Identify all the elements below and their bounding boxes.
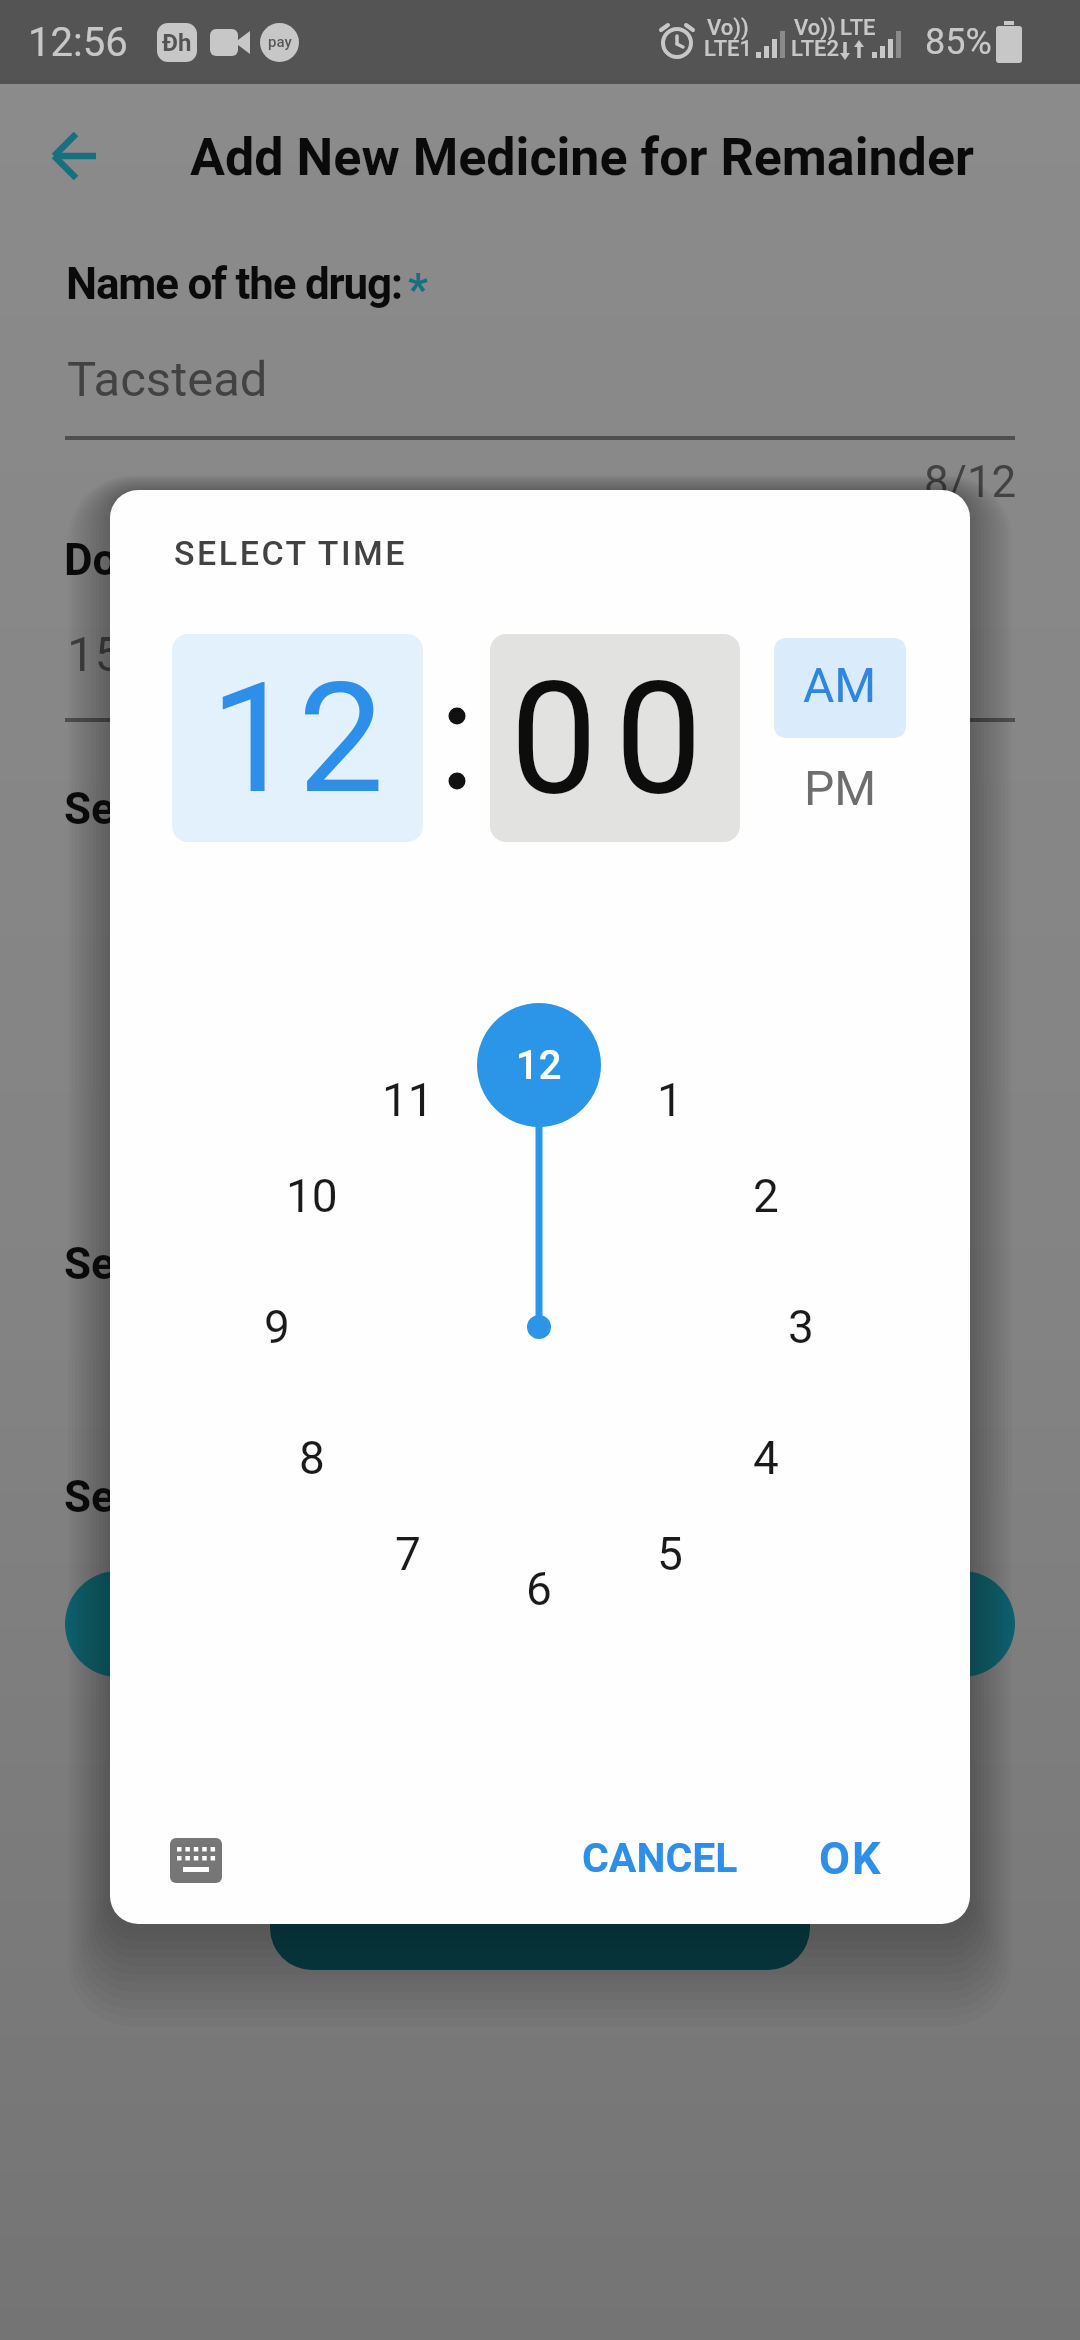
staticText: Add New Medicine for Remainder xyxy=(190,127,975,188)
button[interactable]: 5 xyxy=(630,1514,710,1594)
staticText: Tacstead xyxy=(67,351,268,408)
staticText: 1 xyxy=(657,1073,683,1127)
staticText: OK xyxy=(819,1832,883,1885)
staticText: AM xyxy=(803,657,877,713)
button[interactable]: 1 xyxy=(630,1060,710,1140)
staticText: 7 xyxy=(395,1527,421,1581)
staticText: LTE1 xyxy=(704,36,753,62)
button[interactable]: 2 xyxy=(726,1156,806,1236)
button[interactable] xyxy=(52,132,100,180)
staticText: Select xyxy=(64,1238,189,1290)
staticText: 2 xyxy=(753,1169,779,1223)
staticText: 8/12 xyxy=(924,456,1017,508)
button[interactable]: PM xyxy=(774,738,906,838)
staticText: 10 xyxy=(286,1169,338,1223)
staticText: 5 xyxy=(657,1527,683,1581)
staticText: PM xyxy=(804,760,877,816)
staticText: Name of the drug: xyxy=(66,258,403,310)
staticText: LTE2 xyxy=(791,36,840,62)
button[interactable] xyxy=(170,1838,222,1883)
staticText: Vo)) xyxy=(707,15,749,41)
staticText: LTE xyxy=(840,15,876,41)
staticText: 9 xyxy=(264,1300,290,1354)
button[interactable]: OK xyxy=(791,1818,911,1898)
button[interactable]: 12 xyxy=(477,1003,601,1127)
staticText: 4 xyxy=(753,1431,779,1485)
staticText: 3 xyxy=(788,1300,814,1354)
staticText: Select xyxy=(64,783,189,835)
staticText: 00 xyxy=(510,647,720,830)
staticText: SELECT TIME xyxy=(174,533,407,573)
button[interactable]: 9 xyxy=(237,1287,317,1367)
staticText: 11 xyxy=(382,1073,434,1127)
staticText: 8 xyxy=(299,1431,325,1485)
staticText: Vo)) xyxy=(794,15,836,41)
staticText: Select xyxy=(64,1471,189,1523)
staticText: 12 xyxy=(210,649,386,828)
button[interactable]: CANCEL xyxy=(560,1818,760,1898)
button[interactable] xyxy=(65,1571,1015,1677)
button[interactable]: 4 xyxy=(726,1418,806,1498)
staticText: 85% xyxy=(925,21,992,63)
button[interactable]: AM xyxy=(774,638,906,738)
button[interactable]: 12 xyxy=(172,634,423,842)
staticText: * xyxy=(408,264,428,316)
button[interactable]: 00 xyxy=(490,634,740,842)
staticText: CANCEL xyxy=(582,1834,738,1882)
button[interactable]: 11 xyxy=(368,1060,448,1140)
staticText: 6 xyxy=(526,1562,552,1616)
button[interactable]: 6 xyxy=(499,1549,579,1629)
staticText: 12:56 xyxy=(28,19,128,66)
button[interactable]: 10 xyxy=(272,1156,352,1236)
button[interactable]: 7 xyxy=(368,1514,448,1594)
button[interactable]: 3 xyxy=(761,1287,841,1367)
staticText: 150 xyxy=(67,626,150,683)
staticText: Dosage xyxy=(64,534,213,586)
staticText: pay xyxy=(268,33,292,51)
staticText: Ðh xyxy=(162,29,192,57)
button[interactable]: 8 xyxy=(272,1418,352,1498)
staticText: 12 xyxy=(516,1042,562,1089)
